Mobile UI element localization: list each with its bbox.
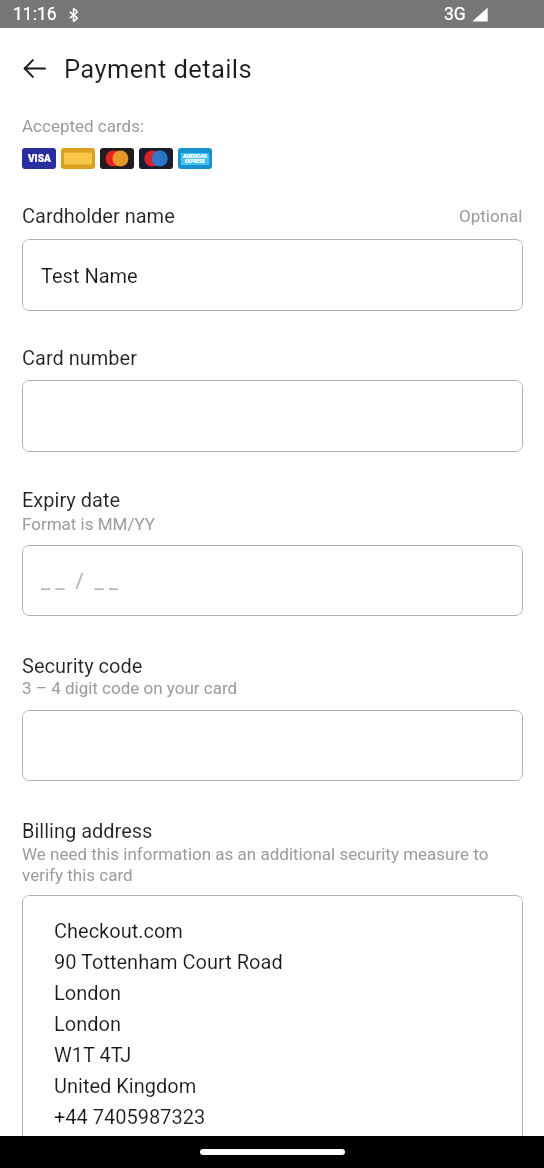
button[interactable]: Expiry date	[22, 545, 523, 616]
staticText: Test Name	[41, 264, 138, 287]
button[interactable]: Security code	[22, 710, 523, 781]
staticText: Security code	[22, 654, 143, 677]
staticText: Cardholder name	[22, 204, 175, 227]
staticText: Billing address	[22, 819, 153, 842]
staticText: 3 – 4 digit code on your card	[22, 678, 238, 698]
button[interactable]: Card number	[22, 380, 523, 452]
staticText: We need this information as an additiona…	[22, 844, 514, 885]
staticText: VISA	[28, 153, 51, 165]
button[interactable]: Checkout.com	[22, 895, 523, 1145]
other: American Express accepted	[178, 148, 212, 169]
staticText: Payment details	[64, 54, 253, 84]
button[interactable]: Cardholder name	[22, 239, 523, 311]
staticText: Optional	[459, 206, 523, 226]
staticText: 90 Tottenham Court Road	[54, 950, 283, 973]
other: Home gesture handle	[200, 1149, 345, 1155]
staticText: 11:16	[13, 4, 57, 25]
staticText: _ _ / _ _	[41, 569, 119, 592]
staticText: W1T 4TJ	[54, 1043, 132, 1066]
staticText: Card number	[22, 346, 137, 369]
other: Maestro accepted	[139, 148, 173, 169]
other: Mastercard accepted	[100, 148, 134, 169]
staticText: +44 7405987323	[54, 1105, 206, 1128]
other: Signal strength	[472, 7, 488, 22]
staticText: London	[54, 1012, 121, 1035]
staticText: Format is MM/YY	[22, 514, 156, 534]
staticText: Accepted cards:	[22, 116, 145, 136]
staticText: London	[54, 981, 121, 1004]
staticText: 3G	[444, 4, 466, 25]
staticText: United Kingdom	[54, 1074, 197, 1097]
other: Discover accepted	[61, 148, 95, 169]
staticText: Expiry date	[22, 488, 121, 511]
staticText: Checkout.com	[54, 919, 183, 942]
other: Bluetooth on	[69, 8, 78, 22]
other: Visa accepted	[22, 148, 56, 169]
staticText: AMERICAN EXPRESS	[183, 154, 207, 164]
button[interactable]: Navigate up	[12, 46, 56, 90]
